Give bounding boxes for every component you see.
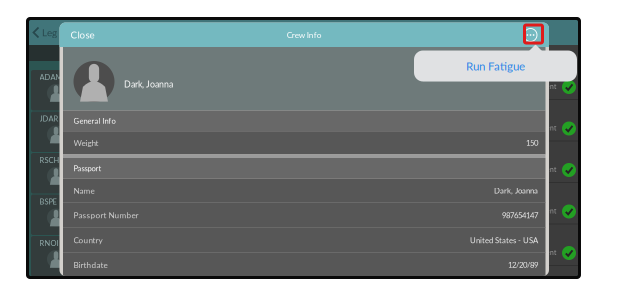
staticText: Passport Number [73,210,138,220]
button[interactable]: Weight [63,131,545,154]
staticText: Dark, Joanna [124,79,173,89]
button[interactable]: RNOI [31,236,69,276]
staticText: RNOI [39,238,58,247]
button[interactable]: JDAR D [31,111,69,152]
button[interactable]: More options [521,26,539,44]
button[interactable]: Close [70,22,110,47]
staticText: General Info [73,116,115,125]
staticText: Passport [73,164,101,173]
button[interactable]: Birthdate [63,253,545,277]
button[interactable]: Passport [63,158,545,178]
button[interactable]: General Info [63,110,545,131]
staticText: ent [546,82,556,90]
staticText: ent [546,207,556,215]
staticText: ent [546,248,556,256]
staticText: JDAR D [39,114,66,123]
button[interactable]: Name [63,178,545,203]
staticText: United States - USA [470,235,538,245]
staticText: Birthdate [73,260,107,270]
staticText: Country [73,235,102,245]
staticText: ent [546,165,556,173]
staticText: ADAM [39,72,62,81]
staticText: Weight [73,138,98,148]
button[interactable]: RSCH [31,153,69,193]
button[interactable]: Back to Legs [31,22,79,43]
staticText: ent [546,124,556,132]
staticText: Name [73,186,94,195]
staticText: Dark, Joanna [494,186,538,195]
staticText: BSPE [39,197,56,206]
button[interactable]: Passport Number [63,203,545,228]
button[interactable]: BSPE [31,194,69,235]
staticText: Crew Info [287,30,322,40]
staticText: 150 [526,138,538,147]
staticText: Close [70,29,94,41]
button[interactable]: ADAM [31,70,69,110]
staticText: RSCH [39,155,59,164]
staticText: Leg [42,27,57,38]
button[interactable]: Run Fatigue [414,50,577,81]
button[interactable]: Country [63,228,545,253]
staticText: 12/20/89 [508,260,538,269]
staticText: 987654147 [502,210,538,220]
staticText: Run Fatigue [466,59,525,73]
